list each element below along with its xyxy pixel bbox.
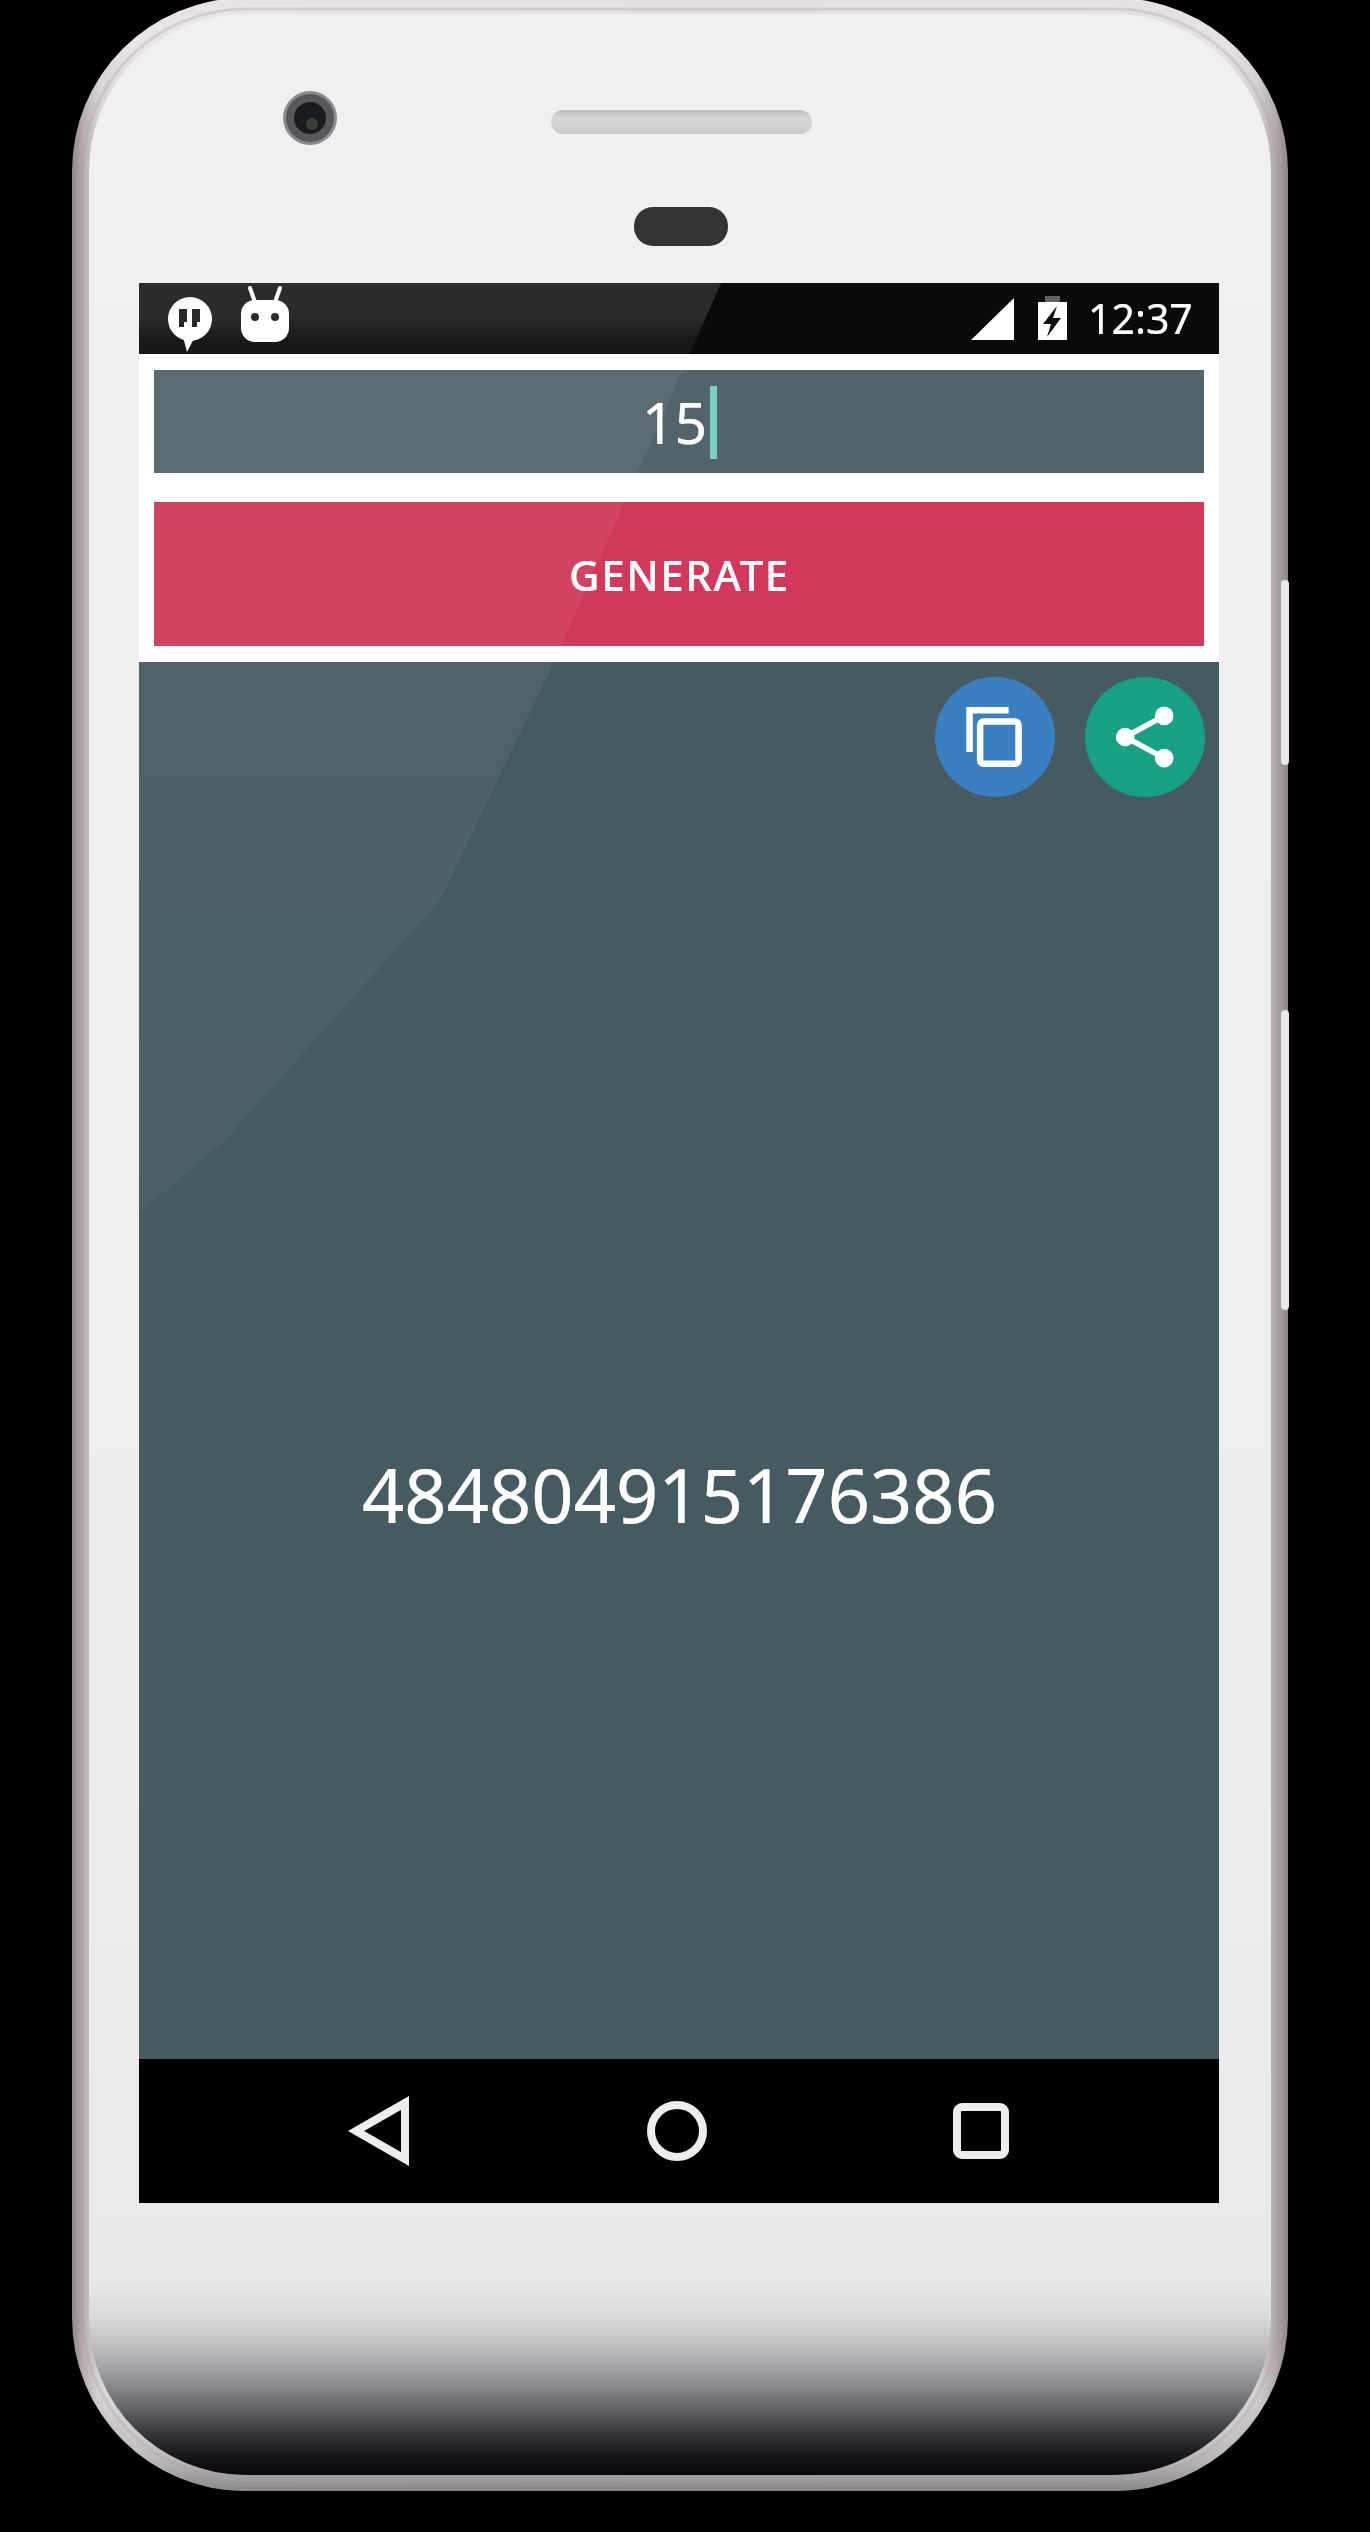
button[interactable]: Share: [1085, 677, 1205, 797]
button[interactable]: 15: [154, 370, 1204, 473]
staticText: 15: [642, 383, 708, 461]
staticText: 484804915176386: [362, 1444, 997, 1545]
button[interactable]: GENERATE: [154, 502, 1204, 646]
button[interactable]: Copy: [935, 677, 1055, 797]
staticText: GENERATE: [569, 546, 790, 603]
staticText: 12:37: [1088, 290, 1193, 346]
